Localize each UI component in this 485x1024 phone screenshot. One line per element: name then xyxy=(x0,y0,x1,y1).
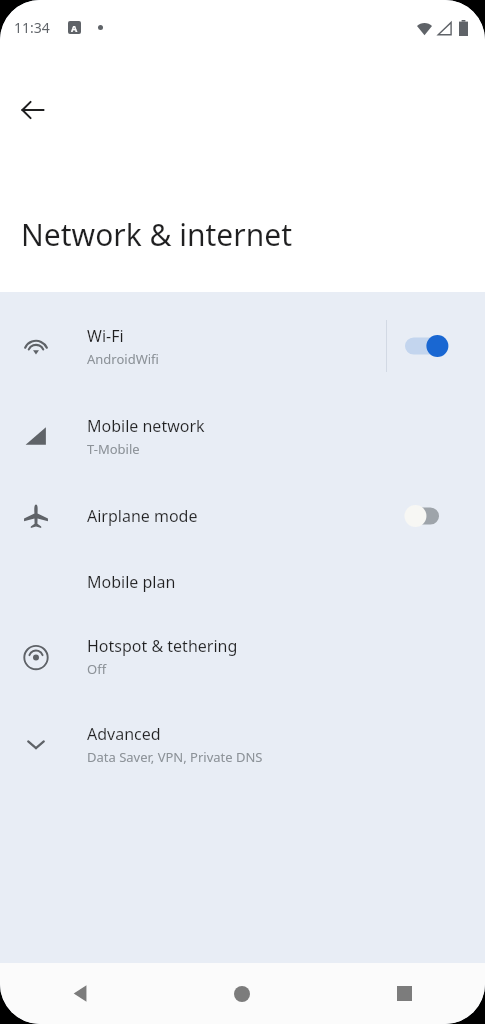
staticText: Off xyxy=(87,660,107,678)
button[interactable]: Airplane mode toggle xyxy=(405,488,465,544)
staticText: Wi-Fi xyxy=(87,325,124,347)
staticText: Data Saver, VPN, Private DNS xyxy=(87,748,263,766)
staticText: Airplane mode xyxy=(87,505,198,527)
staticText: A xyxy=(71,22,78,34)
button[interactable]: Mobile plan xyxy=(0,554,485,610)
staticText: 11:34 xyxy=(14,18,50,37)
staticText: Network & internet xyxy=(21,214,292,255)
button[interactable]: Back xyxy=(9,86,57,134)
button[interactable]: Recents xyxy=(323,963,485,1024)
button[interactable]: Airplane mode xyxy=(0,488,485,544)
button[interactable]: Hotspot & tethering xyxy=(0,620,485,692)
staticText: Hotspot & tethering xyxy=(87,635,238,657)
staticText: Mobile network xyxy=(87,415,205,437)
button[interactable]: Mobile network xyxy=(0,400,485,472)
staticText: T-Mobile xyxy=(87,440,140,458)
staticText: Advanced xyxy=(87,723,161,745)
button[interactable]: Wi-Fi xyxy=(0,310,485,382)
staticText: Mobile plan xyxy=(87,571,176,593)
staticText: AndroidWifi xyxy=(87,350,159,368)
button[interactable]: Home xyxy=(161,963,323,1024)
button[interactable]: Wi-Fi toggle xyxy=(405,310,465,382)
button[interactable]: Back xyxy=(0,963,161,1024)
button[interactable]: Advanced xyxy=(0,708,485,780)
